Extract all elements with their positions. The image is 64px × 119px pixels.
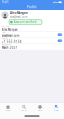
staticText: March 2021 <box>2 46 18 49</box>
staticText: alex@mail.com <box>2 34 19 37</box>
staticText: FULL NAME <box>2 26 10 28</box>
staticText: Search <box>21 110 27 111</box>
button[interactable]: Profile <box>48 103 64 113</box>
button[interactable]: FULL NAME <box>0 26 64 32</box>
button[interactable]: Alerts <box>32 103 48 113</box>
staticText: PHONE <box>2 38 7 40</box>
button[interactable]: Home <box>0 103 16 113</box>
button[interactable]: PHONE <box>0 38 64 44</box>
staticText: MEMBER SINCE <box>2 44 12 46</box>
button[interactable]: MEMBER SINCE <box>0 44 64 50</box>
staticText: Alerts <box>38 110 42 111</box>
staticText: alex@mail.com <box>10 15 27 19</box>
staticText: 9:41 <box>2 0 9 4</box>
button[interactable]: EMAIL <box>0 32 64 38</box>
staticText: Profile <box>27 5 37 9</box>
staticText: +1 555 0134 <box>2 40 22 43</box>
staticText: Edit <box>59 34 61 36</box>
staticText: Account verified <box>13 20 36 24</box>
staticText: Edit <box>59 40 61 42</box>
staticText: Home <box>6 110 10 111</box>
staticText: EMAIL <box>2 32 6 34</box>
staticText: Alex Morgan <box>10 11 28 15</box>
button[interactable]: Search <box>16 103 32 113</box>
staticText: Profile <box>53 110 58 111</box>
staticText: Alex Morgan <box>2 28 18 31</box>
